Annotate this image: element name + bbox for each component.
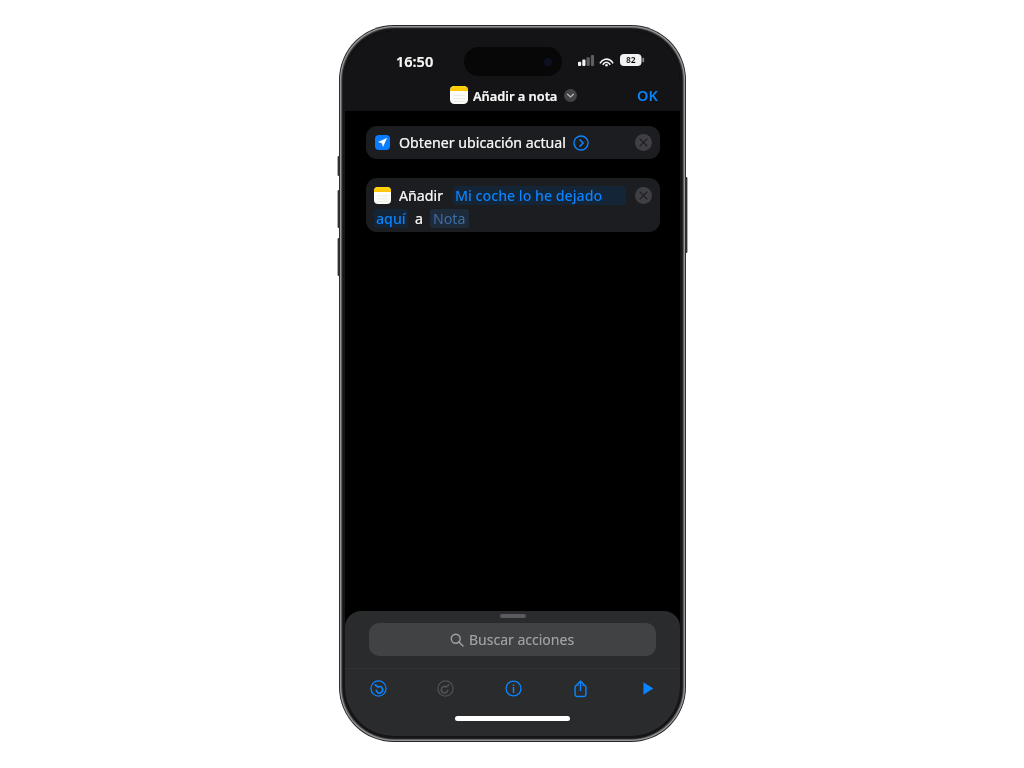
button[interactable]: Deshacer: [363, 671, 393, 705]
staticText: OK: [637, 85, 658, 105]
staticText: Mi coche lo he dejado: [455, 186, 603, 205]
button[interactable]: Eliminar acción: [635, 134, 652, 151]
staticText: 82: [626, 54, 636, 66]
staticText: Nota: [433, 209, 466, 228]
button[interactable]: OK: [625, 79, 670, 111]
staticText: Buscar acciones: [469, 630, 575, 649]
button[interactable]: Rehacer: [430, 671, 460, 705]
staticText: Obtener ubicación actual: [399, 133, 566, 152]
button[interactable]: Eliminar acción: [635, 187, 652, 204]
staticText: a: [415, 209, 423, 228]
button[interactable]: Buscar acciones: [369, 623, 656, 656]
button[interactable]: Añadir a nota: [450, 84, 577, 106]
staticText: 16:50: [396, 51, 434, 71]
staticText: aquí: [376, 209, 406, 228]
button[interactable]: Ejecutar: [632, 671, 662, 705]
staticText: Añadir: [399, 186, 444, 205]
button[interactable]: Información: [498, 671, 528, 705]
button[interactable]: Obtener ubicación actual: [366, 126, 660, 159]
button[interactable]: Mostrar detalles: [573, 135, 589, 151]
button[interactable]: Añadir: [366, 178, 660, 232]
staticText: Añadir a nota: [473, 87, 558, 104]
button[interactable]: Compartir: [565, 671, 595, 705]
